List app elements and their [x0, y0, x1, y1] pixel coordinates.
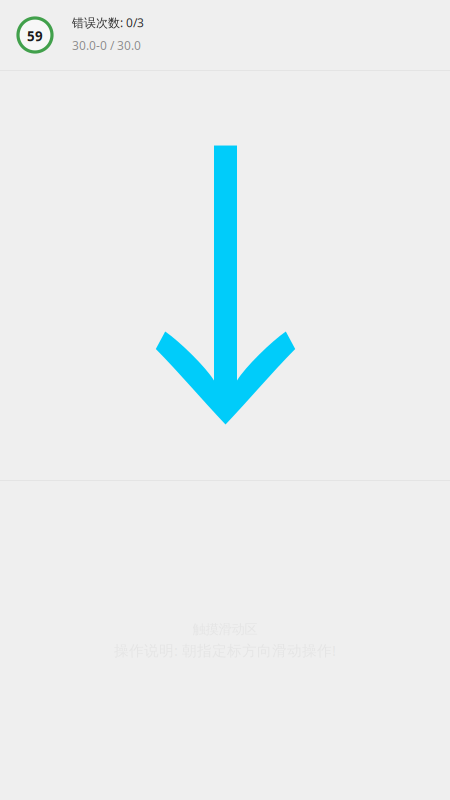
staticText: 59: [27, 27, 43, 45]
button[interactable]: 剩余时间 59 秒: [16, 16, 54, 54]
staticText: 错误次数: 0/3: [72, 15, 144, 30]
staticText: 30.0-0 / 30.0: [72, 37, 141, 53]
